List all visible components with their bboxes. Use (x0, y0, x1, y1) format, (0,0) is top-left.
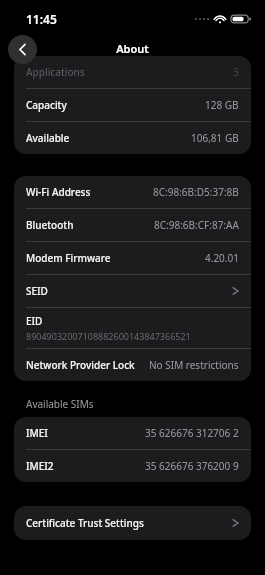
staticText: Available (26, 131, 70, 145)
button[interactable]: IMEI2 (14, 450, 251, 482)
staticText: 8C:98:6B:CF:87:AA (154, 218, 239, 232)
staticText: IMEI (26, 426, 48, 440)
button[interactable]: Bluetooth (14, 209, 251, 241)
staticText: No SIM restrictions (149, 358, 239, 372)
staticText: EID (26, 314, 43, 328)
staticText: 106,81 GB (191, 131, 239, 145)
staticText: IMEI2 (26, 459, 54, 473)
staticText: Available SIMs (26, 397, 94, 411)
staticText: Capacity (26, 98, 67, 112)
staticText: Modem Firmware (26, 251, 111, 265)
staticText: SEID (26, 284, 48, 298)
staticText: 35 626676 312706 2 (145, 426, 239, 440)
staticText: 3 (233, 65, 239, 79)
staticText: 4.20.01 (205, 251, 239, 265)
staticText: 11:45 (26, 11, 57, 27)
staticText: Applications (26, 65, 85, 79)
button[interactable]: Network Provider Lock (14, 349, 251, 381)
staticText: 35 626676 376200 9 (145, 459, 239, 473)
button[interactable]: Capacity (14, 89, 251, 121)
staticText: Network Provider Lock (26, 358, 135, 372)
button[interactable]: Available (14, 122, 251, 154)
button[interactable]: Back (8, 35, 37, 64)
button[interactable]: SEID (14, 275, 251, 307)
staticText: Wi-Fi Address (26, 185, 91, 199)
button[interactable]: Certificate Trust Settings (14, 506, 251, 540)
staticText: Bluetooth (26, 218, 74, 232)
button[interactable]: Applications (14, 56, 251, 88)
button[interactable]: Wi-Fi Address (14, 176, 251, 208)
staticText: About (0, 41, 265, 56)
button[interactable]: EID (14, 308, 251, 348)
staticText: 89049032007108882600143847366521 (26, 330, 191, 342)
staticText: 128 GB (205, 98, 239, 112)
staticText: Certificate Trust Settings (26, 516, 144, 530)
button[interactable]: Modem Firmware (14, 242, 251, 274)
button[interactable]: IMEI (14, 417, 251, 449)
staticText: 8C:98:6B:D5:37:8B (153, 185, 239, 199)
